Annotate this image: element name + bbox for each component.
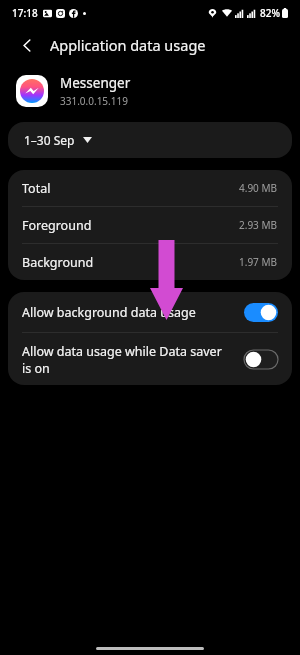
staticText: 4.90 MB [239, 181, 278, 195]
staticText: 1–30 Sep [24, 132, 75, 148]
staticText: Allow background data usage [22, 304, 232, 321]
staticText: 2.93 MB [239, 218, 278, 232]
staticText: Application data usage [50, 35, 206, 55]
button[interactable]: Allow data usage while Data saver is on [8, 333, 292, 385]
staticText: 82% [260, 6, 280, 20]
staticText: 1.97 MB [239, 255, 278, 269]
staticText: 331.0.0.15.119 [60, 94, 128, 108]
staticText: Messenger [60, 74, 131, 92]
button[interactable]: Allow background data usage [8, 292, 292, 332]
button[interactable]: Background [8, 244, 292, 280]
staticText: Allow data usage while Data saver is on [22, 343, 232, 376]
staticText: Total [22, 180, 51, 197]
button[interactable]: Total [8, 170, 292, 206]
button[interactable]: Back [14, 32, 40, 58]
staticText: Foreground [22, 217, 92, 234]
staticText: Background [22, 254, 94, 271]
staticText: 17:18 [12, 6, 38, 20]
button[interactable]: Foreground [8, 207, 292, 243]
button[interactable]: 1–30 Sep [8, 122, 292, 158]
